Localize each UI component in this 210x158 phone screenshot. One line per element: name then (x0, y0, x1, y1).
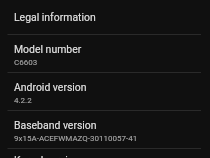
staticText: C6603 (14, 58, 38, 67)
button[interactable]: Baseband version (0, 111, 210, 149)
staticText: Model number (14, 43, 82, 55)
staticText: Legal information (14, 11, 96, 23)
button[interactable]: Kernel version (0, 149, 210, 158)
staticText: Baseband version (14, 119, 97, 131)
staticText: 4.2.2 (14, 96, 32, 105)
button[interactable]: Android version (0, 73, 210, 111)
staticText: Kernel version (14, 154, 80, 158)
button[interactable]: Model number (0, 35, 210, 73)
button[interactable]: Legal information (0, 0, 210, 35)
staticText: 9x15A-ACEFWMAZQ-30110057-41 (14, 134, 138, 143)
staticText: Android version (14, 81, 87, 93)
